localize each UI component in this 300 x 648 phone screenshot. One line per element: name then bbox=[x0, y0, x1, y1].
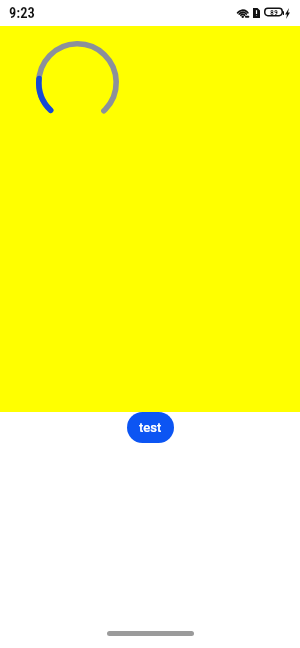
button[interactable]: test bbox=[127, 412, 174, 443]
staticText: 89 bbox=[270, 8, 278, 17]
staticText: test bbox=[139, 420, 162, 435]
staticText: 9:23 bbox=[9, 5, 35, 22]
